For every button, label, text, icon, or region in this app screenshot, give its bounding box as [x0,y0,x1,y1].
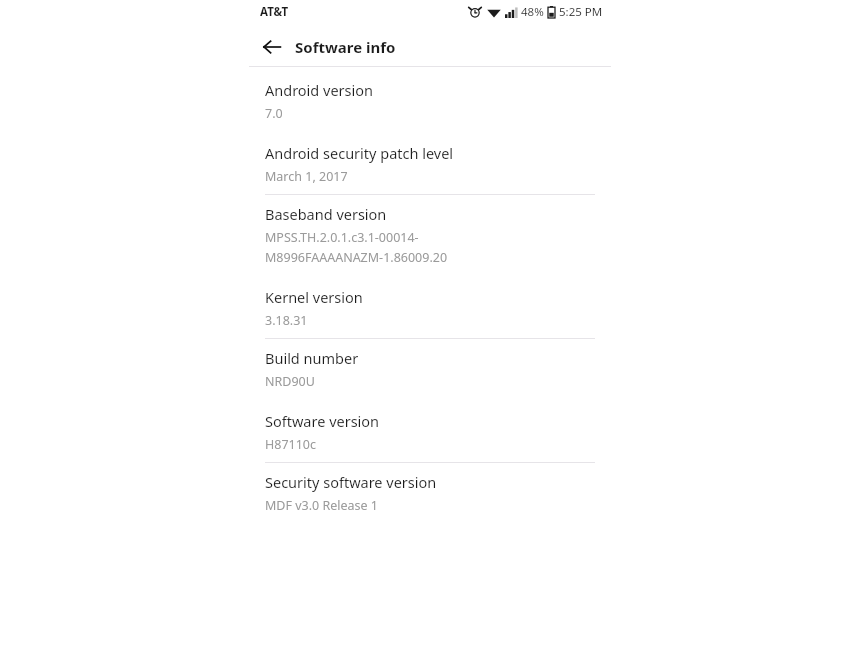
staticText: 7.0 [265,105,283,122]
staticText: MDF v3.0 Release 1 [265,497,379,514]
button[interactable]: Back [255,30,289,64]
staticText: Build number [265,348,359,368]
button[interactable]: Android security patch level [249,143,611,185]
staticText: NRD90U [265,373,315,390]
staticText: Security software version [265,472,437,492]
staticText: Android version [265,80,373,100]
staticText: AT&T [260,4,289,20]
staticText: M8996FAAAANAZM-1.86009.20 [265,249,448,266]
staticText: Software version [265,411,380,431]
button[interactable]: Kernel version [249,287,611,329]
staticText: March 1, 2017 [265,168,348,185]
staticText: H87110c [265,436,317,453]
button[interactable]: Android version [249,80,611,122]
staticText: Baseband version [265,204,387,224]
staticText: Software info [295,37,396,57]
button[interactable]: Build number [249,348,611,390]
staticText: 5:25 PM [559,4,603,20]
button[interactable]: Software version [249,411,611,453]
staticText: Android security patch level [265,143,454,163]
staticText: MPSS.TH.2.0.1.c3.1-00014- [265,229,419,246]
staticText: 48% [521,4,544,20]
button[interactable]: Security software version [249,472,611,514]
button[interactable]: Baseband version [249,204,611,266]
staticText: 3.18.31 [265,312,308,329]
staticText: Kernel version [265,287,363,307]
